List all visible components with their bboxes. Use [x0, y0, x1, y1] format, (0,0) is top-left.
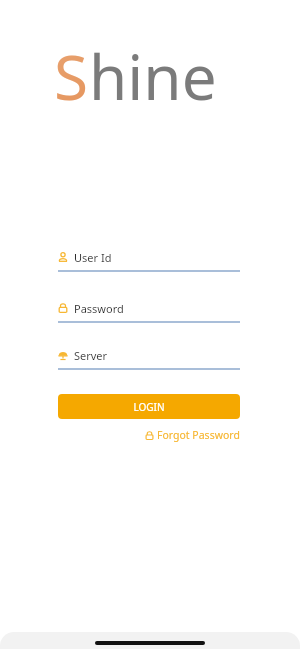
staticText: Password	[74, 301, 124, 316]
staticText: S	[54, 34, 89, 118]
staticText: hine	[89, 34, 217, 118]
staticText: User Id	[74, 250, 112, 265]
staticText: Server	[74, 348, 108, 363]
button[interactable]: Password	[58, 299, 240, 323]
button[interactable]: LOGIN	[58, 394, 240, 419]
staticText: LOGIN	[133, 400, 165, 414]
staticText: Forgot Password	[157, 428, 240, 442]
button[interactable]: User Id	[58, 248, 240, 272]
button[interactable]: Forgot Password	[145, 428, 240, 442]
button[interactable]: Server	[58, 346, 240, 370]
